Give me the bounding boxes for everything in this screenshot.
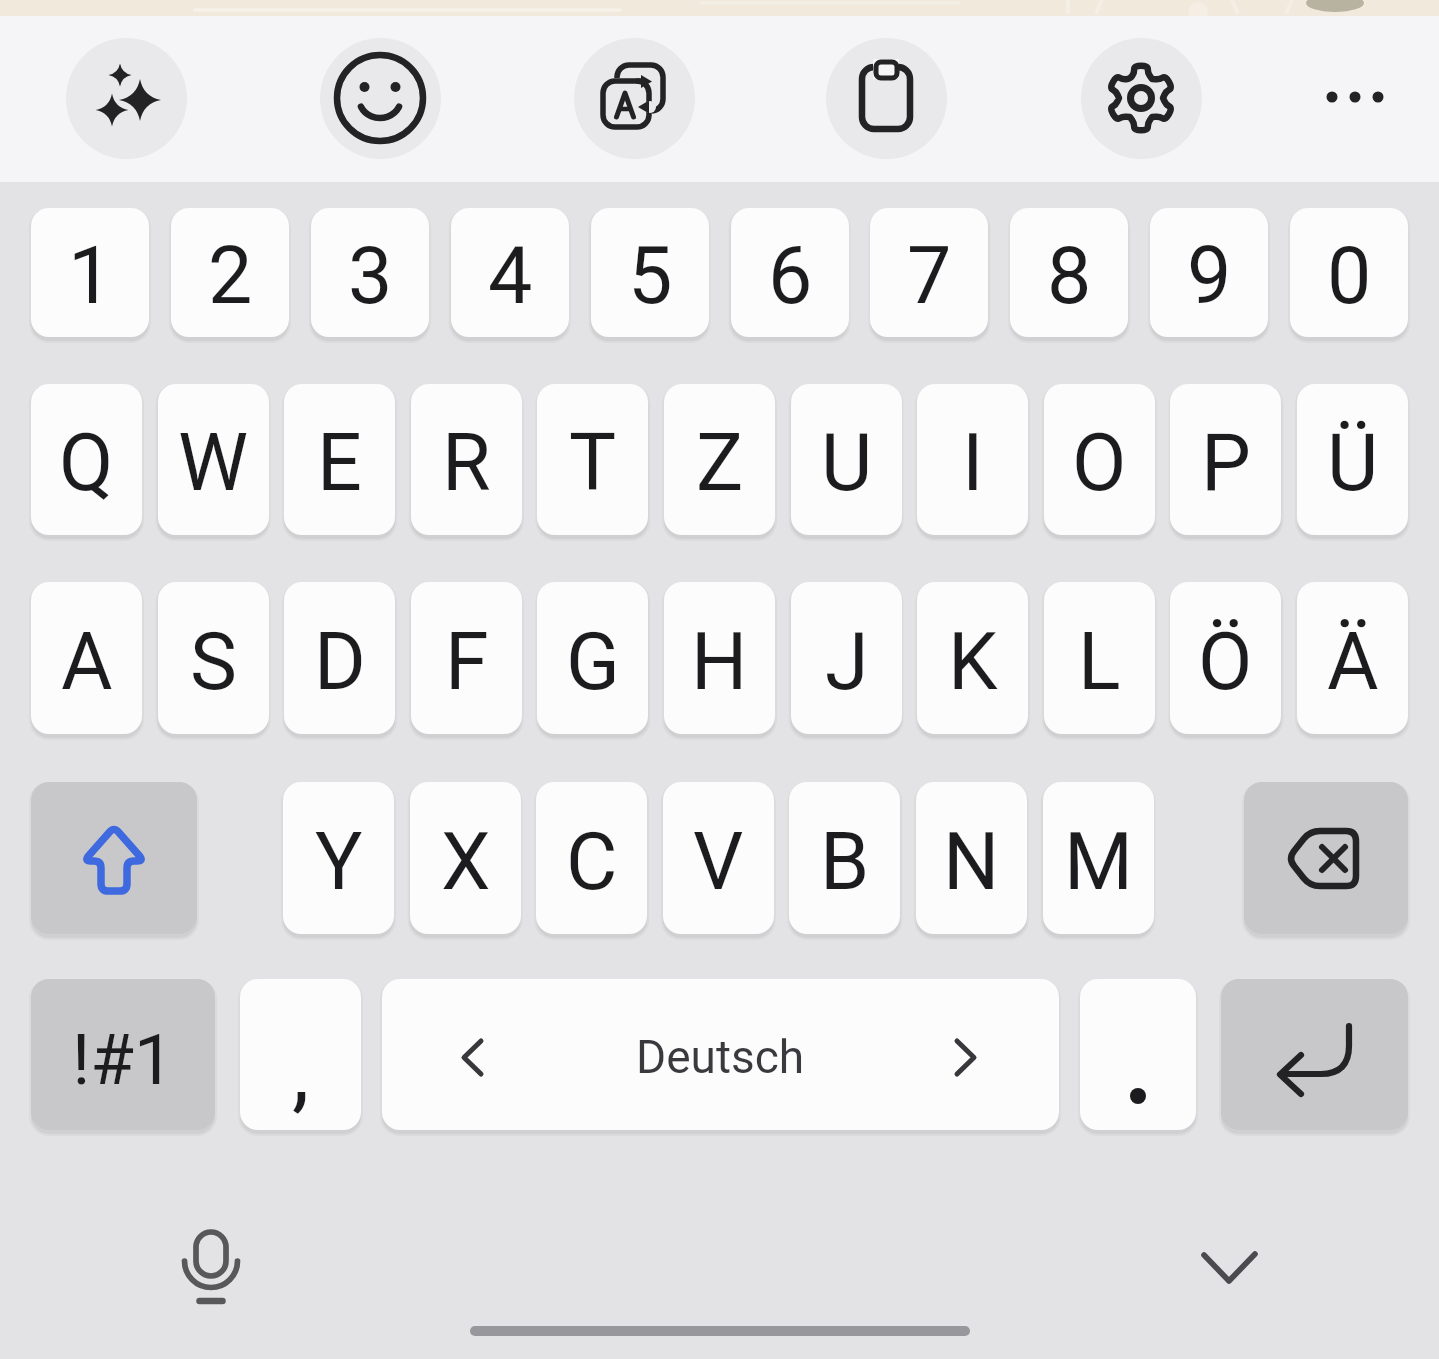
staticText: 3 (348, 230, 393, 323)
button[interactable]: Ä (1297, 582, 1408, 734)
button[interactable] (574, 38, 695, 159)
button[interactable]: V (663, 782, 774, 934)
staticText: 5 (628, 230, 673, 323)
button[interactable]: 3 (311, 208, 429, 337)
staticText: P (1201, 417, 1251, 510)
button[interactable]: R (411, 384, 522, 535)
staticText: R (442, 417, 491, 510)
button[interactable]: N (916, 782, 1027, 934)
button[interactable] (1221, 979, 1408, 1130)
button[interactable]: P (1170, 384, 1281, 535)
staticText: Q (59, 417, 114, 510)
staticText: 6 (768, 230, 813, 323)
staticText: Ü (1327, 417, 1379, 510)
staticText: X (441, 816, 491, 909)
button[interactable]: 7 (870, 208, 988, 337)
button[interactable]: E (284, 384, 395, 535)
staticText: U (821, 417, 873, 510)
staticText: N (943, 816, 1000, 909)
button[interactable]: X (410, 782, 521, 934)
staticText: B (820, 816, 870, 909)
staticText: Ö (1198, 616, 1253, 709)
staticText: Deutsch (636, 1030, 805, 1084)
button[interactable]: 4 (451, 208, 569, 337)
button[interactable]: C (536, 782, 647, 934)
staticText: 1 (68, 230, 113, 323)
button[interactable]: F (411, 582, 522, 734)
staticText: F (445, 616, 489, 709)
button[interactable]: 0 (1290, 208, 1408, 337)
button[interactable] (151, 1207, 271, 1327)
staticText: H (691, 616, 748, 709)
staticText: 0 (1327, 230, 1372, 323)
staticText: W (178, 417, 249, 510)
staticText: Ä (1327, 616, 1379, 709)
button[interactable]: M (1043, 782, 1154, 934)
staticText: 8 (1047, 230, 1092, 323)
button[interactable]: D (284, 582, 395, 734)
button[interactable] (66, 38, 187, 159)
button[interactable]: Ü (1297, 384, 1408, 535)
staticText: 7 (907, 230, 952, 323)
button[interactable] (31, 782, 197, 934)
button[interactable]: 5 (591, 208, 709, 337)
button[interactable] (1169, 1208, 1289, 1328)
staticText: A (61, 616, 113, 709)
staticText: E (317, 417, 362, 510)
button[interactable]: Deutsch (382, 979, 1059, 1130)
button[interactable]: Y (283, 782, 394, 934)
staticText: 2 (208, 230, 253, 323)
button[interactable] (1081, 38, 1202, 159)
button[interactable]: S (158, 582, 269, 734)
button[interactable]: 9 (1150, 208, 1268, 337)
button[interactable]: B (789, 782, 900, 934)
staticText: 9 (1187, 230, 1232, 323)
button[interactable]: A (31, 582, 142, 734)
button[interactable] (1312, 70, 1402, 126)
button[interactable]: Ö (1170, 582, 1281, 734)
staticText: G (566, 616, 620, 709)
button[interactable]: H (664, 582, 775, 734)
button[interactable]: 1 (31, 208, 149, 337)
staticText: , (292, 1019, 310, 1122)
button[interactable]: 8 (1010, 208, 1128, 337)
button[interactable]: W (158, 384, 269, 535)
button[interactable]: O (1044, 384, 1155, 535)
button[interactable] (826, 38, 947, 159)
button[interactable]: L (1044, 582, 1155, 734)
button[interactable]: I (917, 384, 1028, 535)
staticText: Z (696, 417, 744, 510)
button[interactable]: !#1 (31, 979, 215, 1130)
staticText: I (962, 417, 984, 510)
staticText: O (1072, 417, 1127, 510)
staticText: T (569, 417, 617, 510)
staticText: M (1064, 816, 1133, 909)
staticText: J (825, 616, 869, 709)
button[interactable]: 2 (171, 208, 289, 337)
staticText: S (190, 616, 237, 709)
button[interactable]: J (791, 582, 902, 734)
staticText: D (314, 616, 366, 709)
button[interactable] (1244, 782, 1408, 934)
button[interactable]: T (537, 384, 648, 535)
staticText: C (566, 816, 618, 909)
button[interactable]: Q (31, 384, 142, 535)
button[interactable]: G (537, 582, 648, 734)
staticText: !#1 (72, 1018, 174, 1101)
button[interactable]: , (240, 979, 361, 1130)
button[interactable]: 6 (731, 208, 849, 337)
staticText: L (1078, 616, 1121, 709)
staticText: V (693, 816, 744, 909)
staticText: 4 (488, 230, 533, 323)
button[interactable] (1080, 979, 1196, 1130)
button[interactable]: Z (664, 384, 775, 535)
button[interactable]: U (791, 384, 902, 535)
button[interactable] (320, 38, 441, 159)
button[interactable]: K (917, 582, 1028, 734)
staticText: K (948, 616, 998, 709)
staticText: Y (315, 816, 363, 909)
